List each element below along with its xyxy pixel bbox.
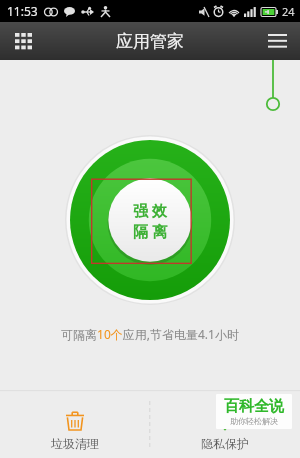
button[interactable]: 百科全说 [216,394,292,429]
button[interactable]: 垃圾清理 [0,391,149,458]
button[interactable]: 强 效 [65,135,235,305]
staticText: 垃圾清理 [51,436,99,451]
staticText: 强 效 [133,200,167,220]
staticText: 百科全说 [224,397,284,416]
staticText: 助你轻松解决 [230,416,278,426]
staticText: 隐私保护 [201,436,249,451]
staticText: 可隔离10个应用,节省电量4.1小时 [61,326,239,342]
button[interactable]: Menu [254,22,300,60]
button[interactable]: Apps grid [0,22,46,60]
staticText: 隔 离 [133,221,167,241]
staticText: 应用管家 [116,31,184,52]
staticText: 24 [282,4,295,19]
staticText: 11:53 [7,3,38,19]
button[interactable]: 隐私保护 [150,391,300,458]
